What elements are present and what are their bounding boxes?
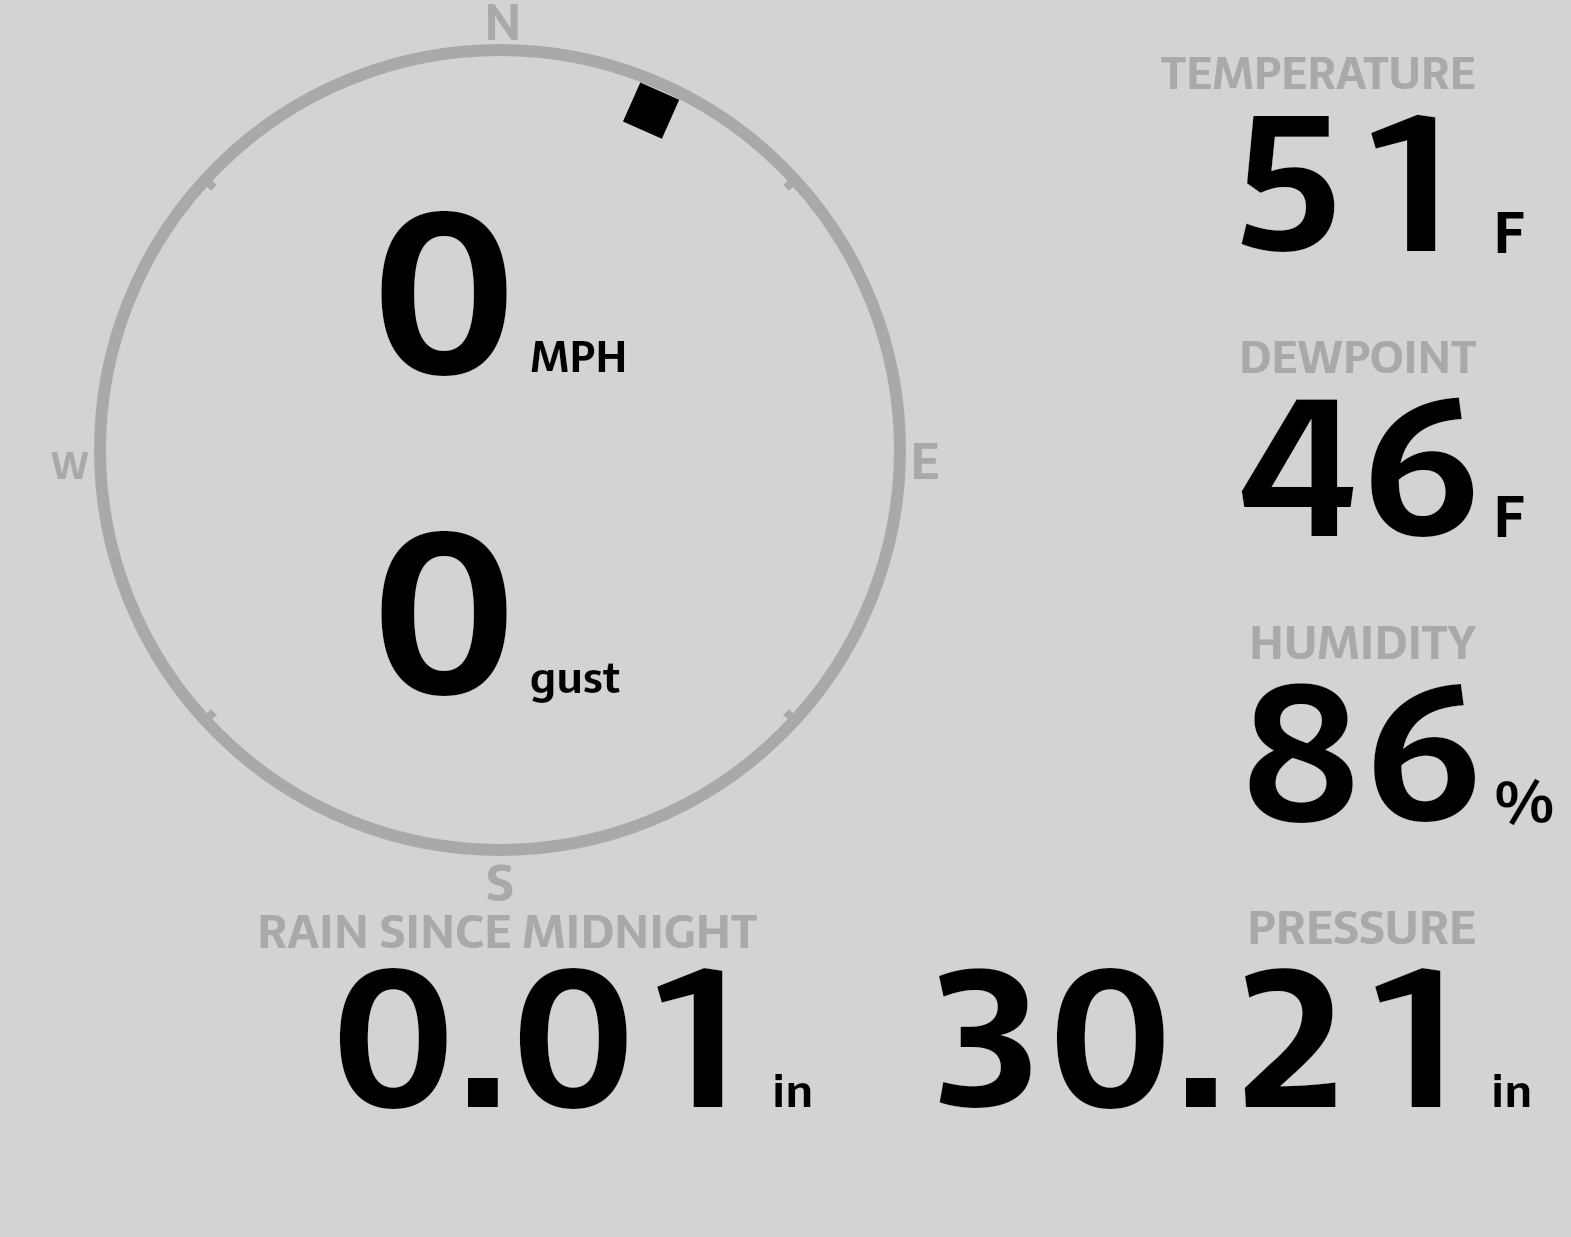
staticText: PRESSURE bbox=[1247, 889, 1477, 965]
staticText: in bbox=[1491, 1055, 1532, 1128]
staticText: % bbox=[1495, 753, 1554, 851]
button[interactable]: Rain since midnight 0.01 inches bbox=[250, 906, 1522, 1125]
staticText: E bbox=[910, 420, 940, 502]
staticText: N bbox=[484, 0, 522, 63]
staticText: 2 bbox=[1239, 880, 1344, 1196]
button[interactable]: Pressure 30.21 inches bbox=[1240, 903, 1522, 1125]
staticText: . bbox=[455, 880, 511, 1196]
staticText: HUMIDITY bbox=[1249, 605, 1476, 680]
staticText: 8 bbox=[1242, 598, 1360, 909]
staticText: 6 bbox=[1367, 598, 1481, 909]
staticText: 0 bbox=[1048, 880, 1173, 1196]
staticText: 6 bbox=[1364, 311, 1479, 625]
staticText: 0 bbox=[371, 108, 517, 479]
staticText: W bbox=[51, 435, 89, 496]
staticText: 3 bbox=[934, 880, 1039, 1196]
staticText: 4 bbox=[1239, 311, 1357, 625]
button[interactable]: Temperature 51 degrees Fahrenheit bbox=[1154, 49, 1523, 268]
staticText: 0 bbox=[331, 880, 456, 1196]
button[interactable]: Wind direction compass bbox=[94, 44, 906, 856]
staticText: . bbox=[1173, 880, 1229, 1196]
staticText: MPH bbox=[530, 322, 628, 391]
staticText: gust bbox=[530, 643, 621, 712]
button[interactable]: Dewpoint 46 degrees Fahrenheit bbox=[1232, 334, 1522, 554]
button[interactable]: Humidity 86 percent bbox=[1242, 619, 1522, 839]
button[interactable]: Wind speed 0 miles per hour bbox=[360, 195, 650, 395]
staticText: F bbox=[1493, 470, 1525, 563]
staticText: RAIN SINCE MIDNIGHT bbox=[257, 893, 758, 969]
staticText: 0 bbox=[511, 880, 636, 1196]
button[interactable]: Wind gust 0 bbox=[360, 515, 650, 715]
staticText: 5 bbox=[1235, 27, 1342, 338]
staticText: F bbox=[1493, 186, 1525, 279]
staticText: 1 bbox=[1374, 880, 1457, 1196]
staticText: 1 bbox=[1370, 27, 1452, 338]
staticText: DEWPOINT bbox=[1239, 321, 1476, 394]
staticText: TEMPERATURE bbox=[1161, 37, 1476, 110]
staticText: in bbox=[772, 1055, 813, 1128]
staticText: 1 bbox=[656, 880, 739, 1196]
staticText: S bbox=[486, 842, 514, 924]
staticText: 0 bbox=[371, 428, 517, 799]
